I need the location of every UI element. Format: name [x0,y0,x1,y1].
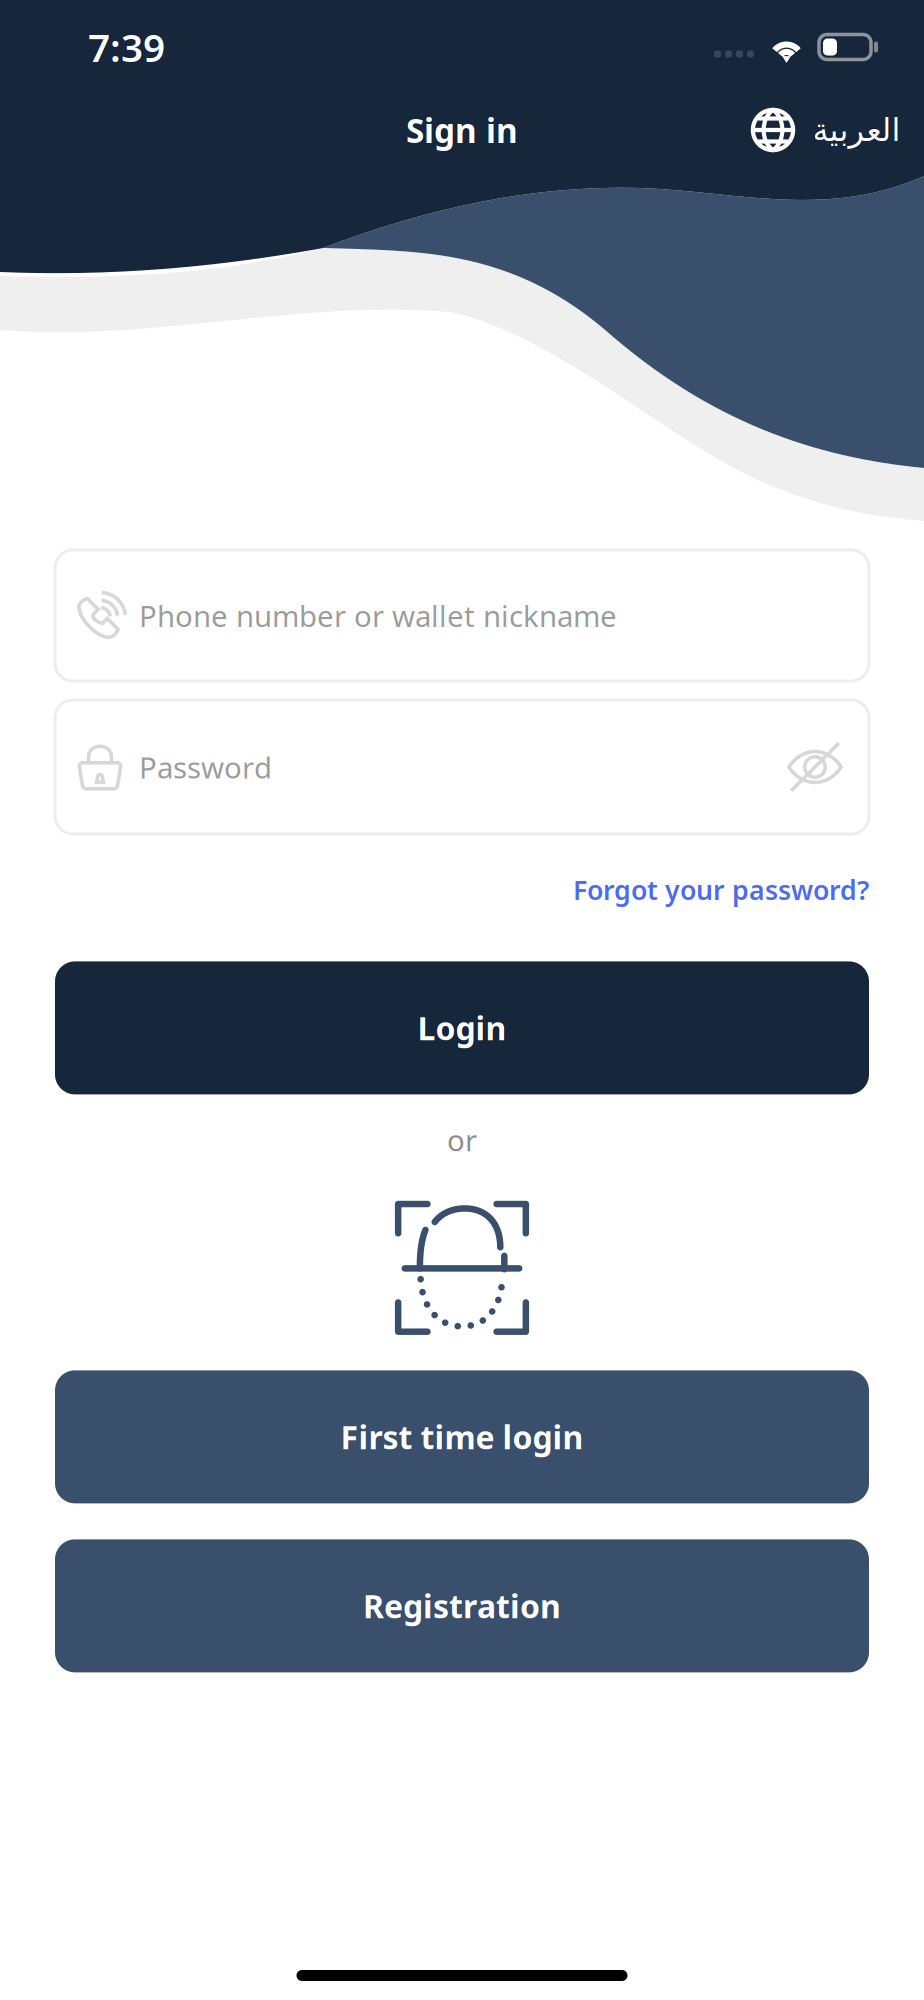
button[interactable]: Face ID login [395,1201,528,1334]
button[interactable]: Login [55,961,869,1094]
staticText: First time login [340,1416,583,1458]
staticText: Password [139,747,272,786]
button[interactable]: Show password [785,737,869,797]
staticText: 7:39 [88,21,165,73]
staticText: Forgot your password? [573,872,869,907]
button[interactable]: First time login [55,1370,869,1503]
staticText: Registration [363,1585,561,1627]
staticText: Phone number or wallet nickname [139,596,617,635]
button[interactable]: العربية [750,107,900,153]
staticText: العربية [812,112,900,148]
staticText: Sign in [406,108,518,152]
staticText: Login [417,1007,506,1049]
button[interactable]: Forgot your password? [573,872,869,907]
button[interactable]: Registration [55,1539,869,1672]
staticText: or [447,1120,477,1159]
